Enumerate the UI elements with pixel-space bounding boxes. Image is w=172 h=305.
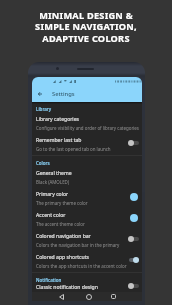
staticText: Colored app shortcuts (36, 254, 89, 261)
staticText: Settings (52, 90, 75, 98)
staticText: Colors the app shortcuts in the accent c… (36, 263, 127, 269)
staticText: Library (36, 106, 52, 112)
staticText: The primary theme color (36, 200, 88, 206)
button[interactable]: Toggle (128, 282, 139, 290)
button[interactable]: Colored app shortcuts (32, 251, 142, 272)
button[interactable]: Toggle (128, 138, 139, 147)
button[interactable]: Color (128, 212, 139, 223)
staticText: Primary color (36, 191, 69, 198)
button[interactable]: Toggle (128, 255, 139, 264)
staticText: Classic notification design (36, 284, 98, 291)
button[interactable]: Toggle (128, 234, 139, 243)
staticText: Accent color (36, 212, 66, 219)
staticText: Colors the navigation bar in the primary… (36, 242, 128, 248)
staticText: Notification (36, 277, 62, 283)
staticText: Go to the last opened tab on launch (36, 146, 111, 152)
staticText: MINIMAL DESIGN & SIMPLE NAVIGATION, ADAP… (35, 9, 137, 45)
button[interactable]: Back (56, 292, 67, 301)
button[interactable]: Recents (108, 292, 119, 301)
staticText: Black (AMOLED) (36, 179, 70, 185)
button[interactable]: Color (128, 191, 139, 202)
button[interactable]: Back (34, 88, 45, 99)
staticText: General theme (36, 170, 72, 177)
staticText: Configure visibility and order of librar… (36, 125, 139, 131)
staticText: The accent theme color (36, 221, 85, 227)
button[interactable]: Classic notification design (32, 284, 142, 292)
staticText: Colored navigation bar (36, 233, 91, 240)
button[interactable]: Primary color (32, 188, 142, 209)
staticText: Colors (36, 160, 50, 166)
button[interactable]: Accent color (32, 209, 142, 230)
staticText: Remember last tab (36, 137, 82, 144)
button[interactable]: Home (83, 292, 94, 301)
button[interactable]: Library categories (32, 113, 142, 134)
button[interactable]: Remember last tab (32, 134, 142, 155)
staticText: Library categories (36, 116, 79, 123)
button[interactable]: Colored navigation bar (32, 230, 142, 251)
button[interactable]: General theme (32, 167, 142, 188)
